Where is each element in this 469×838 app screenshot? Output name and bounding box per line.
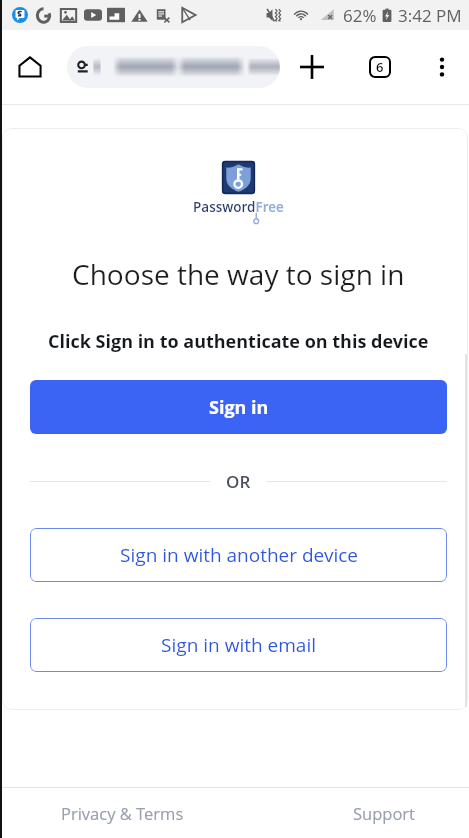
button[interactable]: More options bbox=[415, 37, 469, 97]
button[interactable]: Tabs bbox=[345, 37, 415, 97]
button[interactable]: New tab bbox=[280, 37, 345, 97]
button[interactable]: Sign in bbox=[30, 380, 447, 434]
staticText: Choose the way to sign in bbox=[72, 255, 405, 293]
button[interactable]: Sign in with another device bbox=[30, 528, 447, 582]
staticText: PasswordFree bbox=[193, 198, 284, 216]
staticText: 62% bbox=[343, 4, 377, 27]
button[interactable]: Sign in with email bbox=[30, 618, 447, 672]
staticText: 3:42 PM bbox=[398, 4, 462, 27]
staticText: Privacy & Terms bbox=[61, 802, 184, 824]
button[interactable]: Privacy & Terms bbox=[57, 798, 188, 828]
staticText: Sign in with another device bbox=[120, 542, 358, 568]
staticText: 6 bbox=[376, 58, 384, 76]
staticText: OR bbox=[226, 470, 251, 493]
staticText: Support bbox=[353, 802, 415, 824]
button[interactable]: Support bbox=[349, 798, 419, 828]
staticText: Sign in bbox=[209, 395, 269, 420]
staticText: Click Sign in to authenticate on this de… bbox=[48, 329, 429, 354]
button[interactable]: Home bbox=[0, 37, 67, 97]
button[interactable] bbox=[67, 46, 280, 88]
staticText: Sign in with email bbox=[161, 632, 317, 658]
